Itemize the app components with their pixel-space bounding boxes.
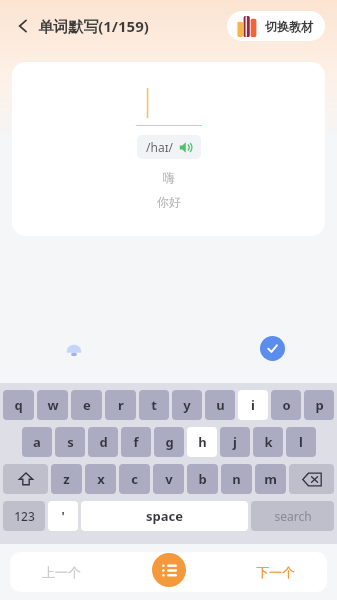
button[interactable]: f: [121, 427, 151, 457]
staticText: n: [232, 470, 241, 488]
staticText: u: [216, 396, 225, 414]
button[interactable]: p: [304, 390, 334, 420]
staticText: space: [146, 507, 183, 525]
button[interactable]: e: [71, 390, 102, 420]
button[interactable]: m: [255, 464, 286, 494]
button[interactable]: Hint: [60, 334, 88, 362]
staticText: g: [165, 433, 174, 451]
staticText: e: [83, 396, 91, 414]
staticText: ': [61, 508, 65, 524]
staticText: b: [198, 470, 207, 488]
staticText: d: [99, 433, 108, 451]
button[interactable]: Word list: [152, 553, 186, 587]
button[interactable]: search: [251, 501, 334, 531]
staticText: 上一个: [42, 564, 81, 580]
staticText: a: [33, 433, 41, 451]
button[interactable]: l: [286, 427, 316, 457]
staticText: p: [315, 396, 324, 414]
button[interactable]: b: [187, 464, 218, 494]
button[interactable]: /haɪ/: [137, 135, 201, 159]
button[interactable]: g: [154, 427, 184, 457]
staticText: h: [198, 433, 207, 451]
button[interactable]: q: [3, 390, 34, 420]
staticText: m: [264, 470, 277, 488]
button[interactable]: k: [253, 427, 283, 457]
button[interactable]: r: [105, 390, 136, 420]
staticText: 123: [14, 508, 35, 524]
button[interactable]: n: [221, 464, 252, 494]
staticText: 单词默写(1/159): [38, 16, 149, 36]
button[interactable]: u: [205, 390, 235, 420]
button[interactable]: x: [85, 464, 116, 494]
staticText: z: [63, 470, 70, 488]
staticText: i: [251, 396, 255, 414]
staticText: 嗨: [163, 170, 175, 185]
staticText: 下一个: [256, 564, 295, 580]
button[interactable]: 123: [3, 501, 45, 531]
button[interactable]: ': [48, 501, 78, 531]
button[interactable]: d: [88, 427, 118, 457]
staticText: l: [299, 433, 303, 451]
button[interactable]: v: [153, 464, 184, 494]
staticText: 切换教材: [265, 19, 313, 34]
button[interactable]: Back: [10, 13, 36, 39]
button[interactable]: a: [22, 427, 52, 457]
staticText: v: [165, 470, 173, 488]
staticText: 你好: [157, 194, 181, 209]
button[interactable]: o: [271, 390, 301, 420]
staticText: r: [118, 396, 124, 414]
button[interactable]: 切换教材: [227, 11, 325, 41]
staticText: q: [14, 396, 23, 414]
staticText: c: [131, 470, 138, 488]
other: Play pronunciation: [179, 141, 192, 154]
staticText: w: [47, 396, 59, 414]
button[interactable]: Confirm: [260, 336, 285, 361]
button[interactable]: h: [187, 427, 217, 457]
staticText: o: [282, 396, 291, 414]
button[interactable]: w: [37, 390, 68, 420]
button[interactable]: space: [81, 501, 248, 531]
staticText: y: [183, 396, 191, 414]
button[interactable]: i: [238, 390, 268, 420]
staticText: k: [264, 433, 273, 451]
staticText: f: [133, 433, 139, 451]
staticText: j: [233, 433, 237, 451]
button[interactable]: /haɪ/: [12, 62, 325, 236]
staticText: t: [151, 396, 157, 414]
staticText: x: [97, 470, 105, 488]
button[interactable]: Backspace: [289, 464, 334, 494]
button[interactable]: t: [139, 390, 169, 420]
button[interactable]: Shift: [3, 464, 48, 494]
button[interactable]: c: [119, 464, 150, 494]
button[interactable]: j: [220, 427, 250, 457]
staticText: s: [67, 433, 74, 451]
button[interactable]: s: [55, 427, 85, 457]
staticText: /haɪ/: [146, 139, 173, 155]
button[interactable]: y: [172, 390, 202, 420]
button[interactable]: 下一个: [242, 558, 309, 586]
button[interactable]: 上一个: [28, 558, 95, 586]
button[interactable]: z: [51, 464, 82, 494]
staticText: search: [274, 508, 312, 524]
